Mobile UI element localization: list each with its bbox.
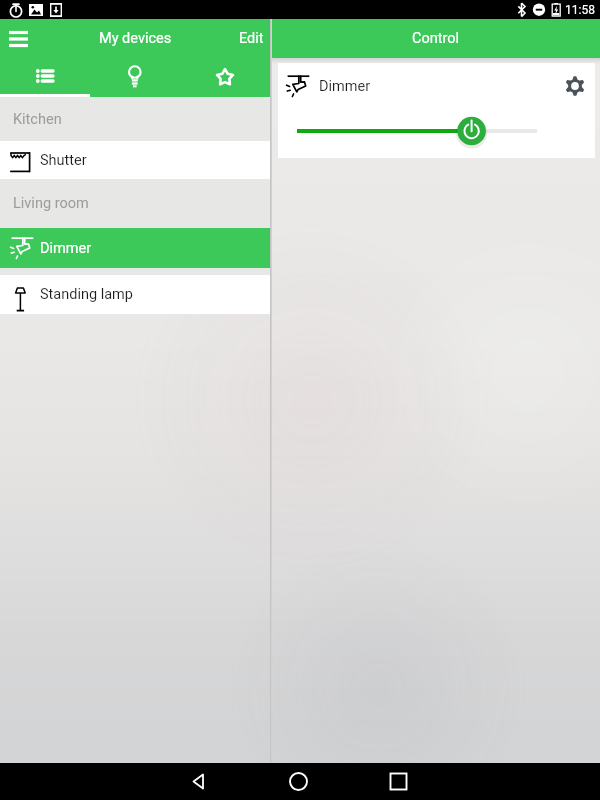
button[interactable]: Favourites (180, 58, 270, 97)
button[interactable]: Devices list (0, 58, 90, 97)
staticText: Dimmer (319, 78, 371, 95)
button[interactable]: Back (180, 763, 217, 800)
staticText: Shutter (40, 152, 87, 169)
staticText: 11:58 (565, 3, 595, 17)
staticText: Living room (13, 195, 89, 212)
button[interactable]: Lights (90, 58, 180, 97)
staticText: Kitchen (13, 111, 62, 128)
button[interactable]: Brightness (278, 113, 595, 149)
staticText: Dimmer (40, 240, 92, 257)
staticText: Standing lamp (40, 286, 133, 303)
button[interactable]: Home (280, 763, 317, 800)
staticText: My devices (99, 30, 172, 47)
button[interactable]: Shutter (0, 141, 270, 179)
button[interactable]: Standing lamp (0, 275, 270, 314)
button[interactable]: Dimmer (0, 228, 270, 268)
button[interactable]: Edit (231, 30, 270, 47)
staticText: Control (412, 30, 460, 47)
button[interactable]: Recent apps (380, 763, 417, 800)
button[interactable]: Open navigation menu (3, 23, 35, 55)
button[interactable]: Settings (561, 72, 589, 100)
